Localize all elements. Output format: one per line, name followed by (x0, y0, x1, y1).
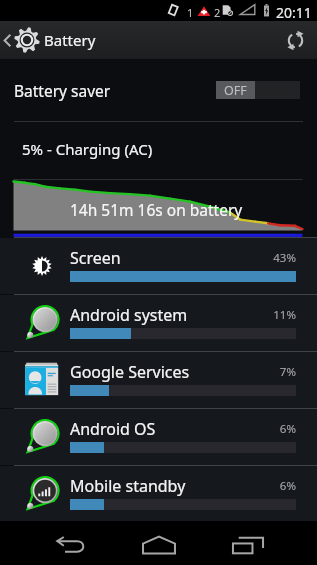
staticText: 6% (248, 421, 296, 437)
button[interactable]: Recent apps (219, 523, 276, 565)
button[interactable]: Refresh (273, 21, 317, 59)
staticText: Android OS (70, 418, 156, 440)
staticText: Battery saver (14, 80, 111, 101)
button[interactable]: Android OS (0, 409, 317, 465)
staticText: Screen (70, 247, 121, 269)
staticText: 43% (248, 250, 296, 266)
staticText: 6% (248, 478, 296, 494)
button[interactable]: Battery saver (0, 59, 317, 121)
staticText: Battery (44, 30, 96, 50)
button[interactable]: Home (130, 523, 187, 565)
button[interactable]: Google Services (0, 352, 317, 408)
staticText: Mobile standby (70, 475, 186, 497)
staticText: 7% (248, 364, 296, 380)
staticText: 20:11 (276, 3, 312, 22)
button[interactable]: Screen (0, 238, 317, 294)
button[interactable]: Android system (0, 295, 317, 351)
button[interactable]: Back (42, 523, 99, 565)
staticText: 2 (214, 5, 221, 20)
staticText: 14h 51m 16s on battery (70, 199, 243, 220)
staticText: 11% (248, 307, 296, 323)
button[interactable]: Battery (0, 21, 102, 59)
button[interactable]: Mobile standby (0, 466, 317, 522)
staticText: 5% - Charging (AC) (22, 139, 153, 159)
staticText: Google Services (70, 361, 190, 383)
staticText: OFF (224, 82, 247, 99)
staticText: Android system (70, 304, 188, 326)
staticText: 1 (187, 5, 194, 20)
